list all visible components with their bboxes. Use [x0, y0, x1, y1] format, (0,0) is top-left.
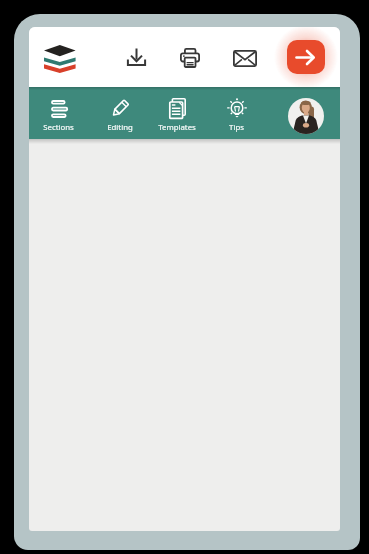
button[interactable] — [288, 98, 324, 134]
button[interactable]: Editing — [91, 87, 148, 139]
button[interactable]: Templates — [148, 87, 205, 139]
button[interactable]: Tips — [208, 87, 265, 139]
button[interactable] — [228, 43, 262, 73]
button[interactable] — [174, 42, 206, 74]
staticText: Sections — [43, 122, 74, 133]
button[interactable] — [41, 43, 79, 73]
button[interactable]: Sections — [30, 87, 87, 139]
button[interactable] — [287, 40, 325, 74]
button[interactable] — [121, 42, 152, 72]
staticText: Editing — [107, 122, 133, 133]
staticText: Tips — [229, 122, 244, 133]
staticText: Templates — [158, 122, 196, 133]
